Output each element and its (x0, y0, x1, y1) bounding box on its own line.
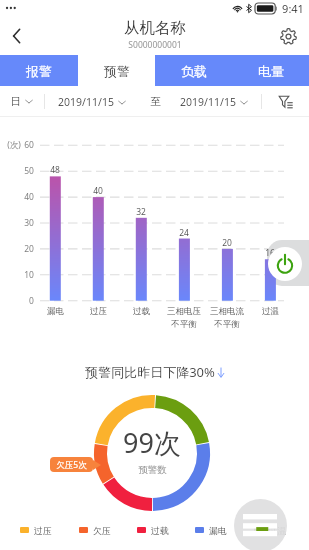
button[interactable]: 日 (10, 95, 33, 108)
staticText: 预警 (104, 63, 130, 79)
staticText: 30 (24, 217, 34, 229)
staticText: 至 (150, 95, 161, 108)
staticText: 40 (93, 185, 103, 197)
staticText: 三相电流 (210, 306, 244, 317)
staticText: 16 (265, 247, 275, 259)
staticText: S0000000001 (128, 39, 182, 51)
button[interactable]: 过温 (254, 522, 286, 538)
button[interactable]: 过载 (137, 522, 169, 538)
staticText: 40 (24, 191, 34, 203)
staticText: 10 (24, 269, 34, 281)
staticText: 过载 (151, 525, 169, 536)
button[interactable]: Filter (271, 86, 299, 117)
staticText: 三相电压 (167, 306, 201, 317)
button[interactable]: Power (268, 247, 302, 281)
staticText: 报警 (26, 63, 52, 79)
staticText: 过温 (268, 525, 286, 536)
staticText: 预警数 (138, 464, 167, 476)
staticText: 从机名称 (124, 18, 186, 38)
button[interactable]: 报警 (0, 55, 78, 86)
button[interactable]: 2019/11/15 (58, 95, 126, 109)
staticText: 48 (50, 164, 60, 176)
staticText: 电量 (258, 63, 284, 79)
staticText: 2019/11/15 (180, 95, 236, 109)
staticText: 50 (24, 165, 34, 177)
button[interactable]: 2019/11/15 (180, 95, 248, 109)
staticText: 过压 (34, 525, 52, 536)
button[interactable]: Menu (234, 499, 287, 550)
button[interactable]: 预警 (78, 55, 155, 86)
staticText: 漏电 (209, 525, 227, 536)
staticText: 9:41 (282, 1, 304, 16)
button[interactable]: Back (0, 19, 33, 53)
staticText: 2019/11/15 (58, 95, 114, 109)
staticText: 过温 (262, 306, 279, 317)
staticText: 过压 (90, 306, 107, 317)
staticText: 32 (136, 206, 146, 218)
staticText: 60 (24, 139, 34, 151)
button[interactable]: 电量 (232, 55, 309, 86)
staticText: 过载 (133, 306, 150, 317)
staticText: (次) (7, 139, 21, 151)
button[interactable]: 欠压 (79, 522, 111, 538)
staticText: 99次 (123, 424, 181, 461)
staticText: 0 (29, 295, 34, 307)
staticText: 欠压 (93, 525, 111, 536)
button[interactable]: 负载 (155, 55, 232, 86)
staticText: 漏电 (47, 306, 64, 317)
staticText: 欠压5次 (56, 459, 87, 471)
staticText: 负载 (181, 63, 207, 79)
staticText: 不平衡 (171, 319, 197, 330)
staticText: 预警同比昨日下降30% (85, 363, 215, 381)
staticText: 不平衡 (214, 319, 240, 330)
button[interactable]: Settings (273, 21, 303, 51)
button[interactable]: 漏电 (195, 522, 227, 538)
staticText: 20 (222, 237, 232, 249)
staticText: 20 (24, 243, 34, 255)
staticText: 24 (179, 227, 189, 239)
button[interactable]: 过压 (20, 522, 52, 538)
staticText: 日 (10, 95, 21, 108)
